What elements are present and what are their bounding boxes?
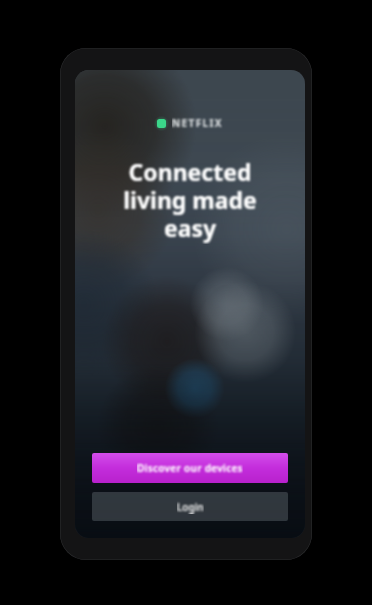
staticText: Login — [177, 500, 204, 514]
staticText: Discover our devices — [137, 461, 243, 475]
button[interactable]: Brand logo — [151, 114, 229, 132]
button[interactable]: Discover our devices — [92, 453, 288, 483]
staticText: Connected living made easy — [95, 156, 285, 244]
button[interactable]: Login — [92, 492, 288, 521]
staticText: NETFLIX — [172, 116, 223, 130]
